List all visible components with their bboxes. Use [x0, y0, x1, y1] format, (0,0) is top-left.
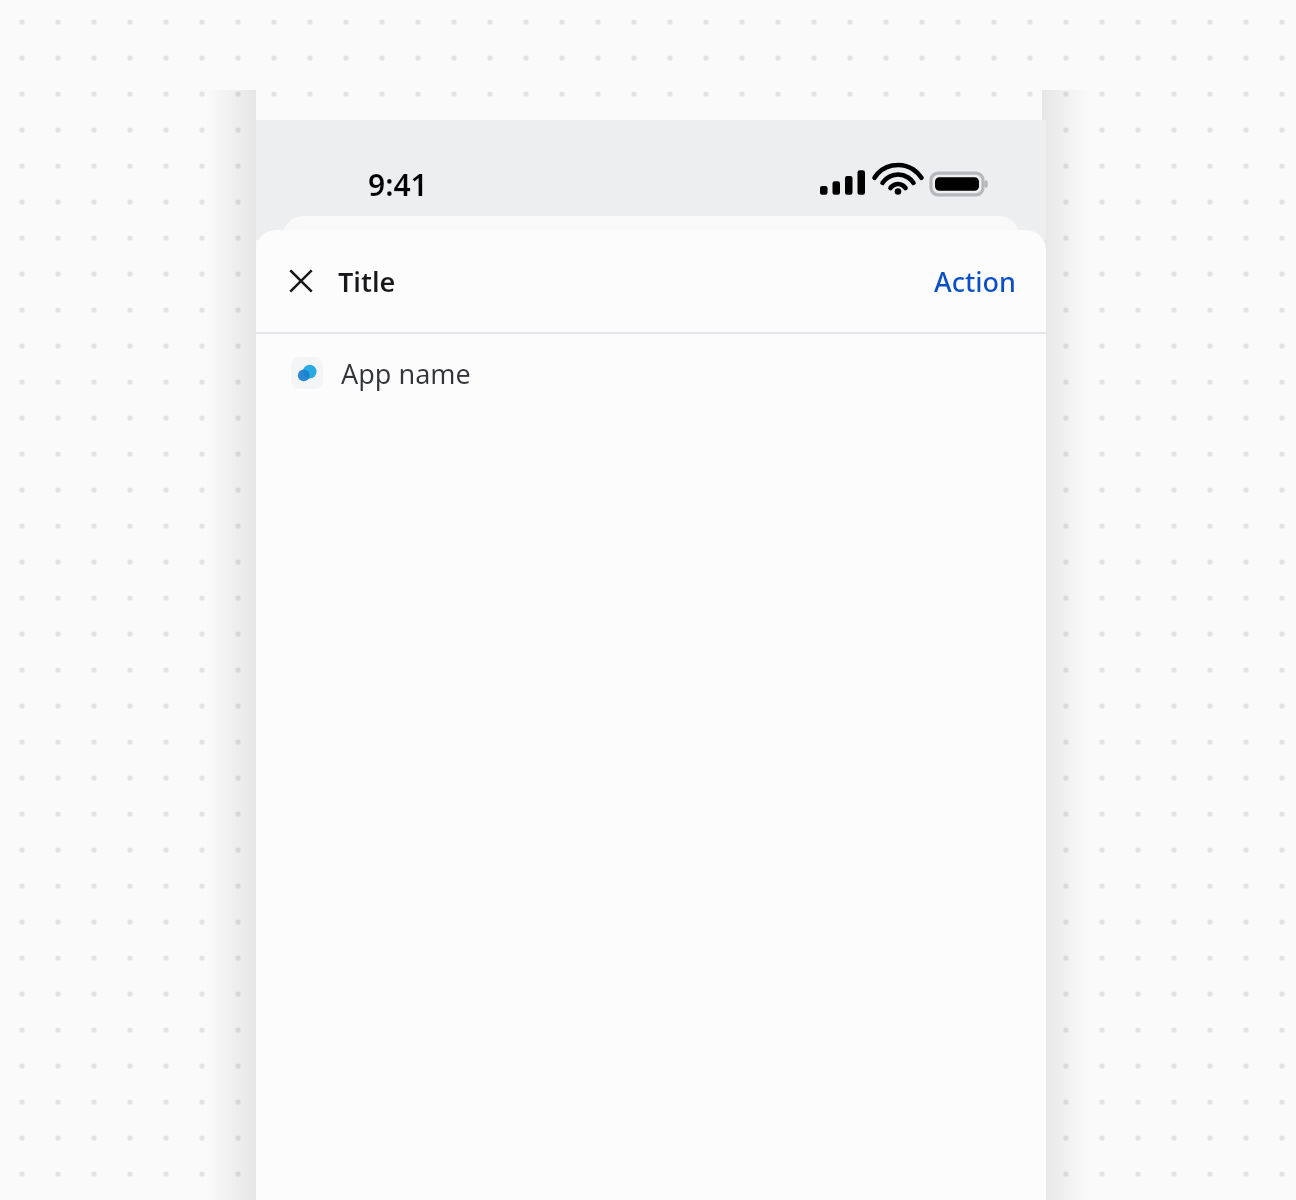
- staticText: App name: [341, 355, 471, 392]
- button[interactable]: Action: [930, 257, 1020, 306]
- button[interactable]: App name: [256, 334, 1046, 412]
- staticText: Action: [934, 263, 1016, 300]
- staticText: 9:41: [368, 164, 428, 205]
- button[interactable]: Close: [284, 264, 318, 298]
- staticText: Title: [338, 263, 396, 300]
